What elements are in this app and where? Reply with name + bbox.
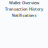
staticText: Transaction History (5, 6, 43, 12)
staticText: Wallet Overview (9, 0, 39, 5)
staticText: Notifications (11, 13, 36, 18)
